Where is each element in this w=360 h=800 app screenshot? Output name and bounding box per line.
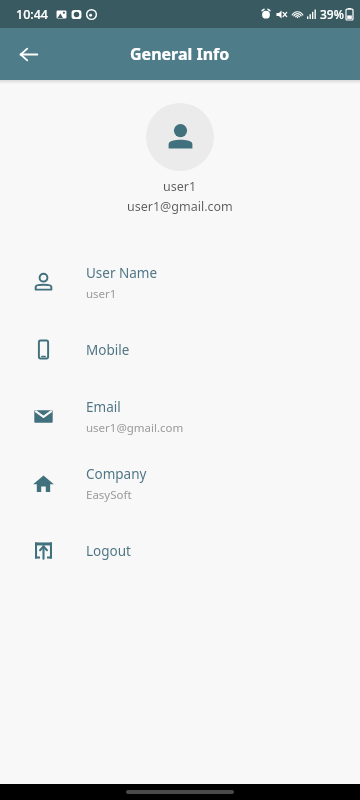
button[interactable]: Mobile	[0, 316, 360, 383]
button[interactable]: Back	[6, 32, 50, 76]
staticText: user1@gmail.com	[127, 198, 233, 215]
staticText: user1	[86, 286, 117, 302]
staticText: EasySoft	[86, 487, 132, 503]
button[interactable]: Logout	[0, 517, 360, 584]
staticText: 39%	[320, 6, 344, 22]
staticText: user1	[163, 178, 197, 195]
staticText: 10:44	[16, 6, 49, 23]
staticText: General Info	[130, 43, 230, 65]
staticText: User Name	[86, 264, 158, 282]
staticText: Logout	[86, 542, 131, 560]
staticText: Email	[86, 398, 121, 416]
staticText: Mobile	[86, 341, 130, 359]
staticText: Company	[86, 465, 147, 483]
staticText: user1@gmail.com	[86, 420, 184, 436]
button[interactable]: User Name	[0, 249, 360, 316]
button[interactable]: Company	[0, 450, 360, 517]
button[interactable]: Email	[0, 383, 360, 450]
